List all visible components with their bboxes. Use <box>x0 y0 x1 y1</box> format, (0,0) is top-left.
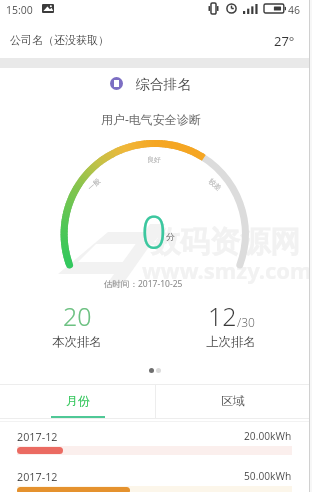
button[interactable]: 区域 <box>156 385 309 419</box>
staticText: 用户-电气安全诊断 <box>101 111 201 127</box>
staticText: 综合排名 <box>136 76 192 92</box>
staticText: /30 <box>237 314 255 330</box>
staticText: www.smzy.com <box>142 255 312 285</box>
staticText: 2017-12 <box>17 469 58 484</box>
staticText: 50.00kWh <box>244 469 292 483</box>
staticText: 0 <box>141 201 167 262</box>
staticText: 15:00 <box>6 3 33 17</box>
staticText: 分 <box>166 231 175 242</box>
staticText: 数码资源网 <box>150 223 300 261</box>
staticText: 估时间：2017-10-25 <box>104 278 183 290</box>
button[interactable]: 2017-12 <box>0 462 309 492</box>
staticText: 区域 <box>221 393 245 408</box>
button[interactable]: 月份 <box>0 385 155 419</box>
staticText: 46 <box>288 3 301 17</box>
staticText: 20 <box>63 299 92 333</box>
staticText: 2017-12 <box>17 429 58 444</box>
button[interactable]: 2017-12 <box>0 422 309 459</box>
staticText: 良好 <box>147 155 161 164</box>
staticText: 较差 <box>207 176 223 193</box>
staticText: 上次排名 <box>206 334 256 350</box>
staticText: 20.00kWh <box>244 429 292 443</box>
staticText: 一般 <box>86 176 102 193</box>
staticText: 月份 <box>66 393 90 408</box>
staticText: 27° <box>274 32 295 50</box>
staticText: 本次排名 <box>52 334 102 350</box>
staticText: 公司名（还没获取） <box>10 33 109 47</box>
button[interactable]: 公司名（还没获取） <box>0 22 312 58</box>
staticText: 12 <box>208 299 237 333</box>
